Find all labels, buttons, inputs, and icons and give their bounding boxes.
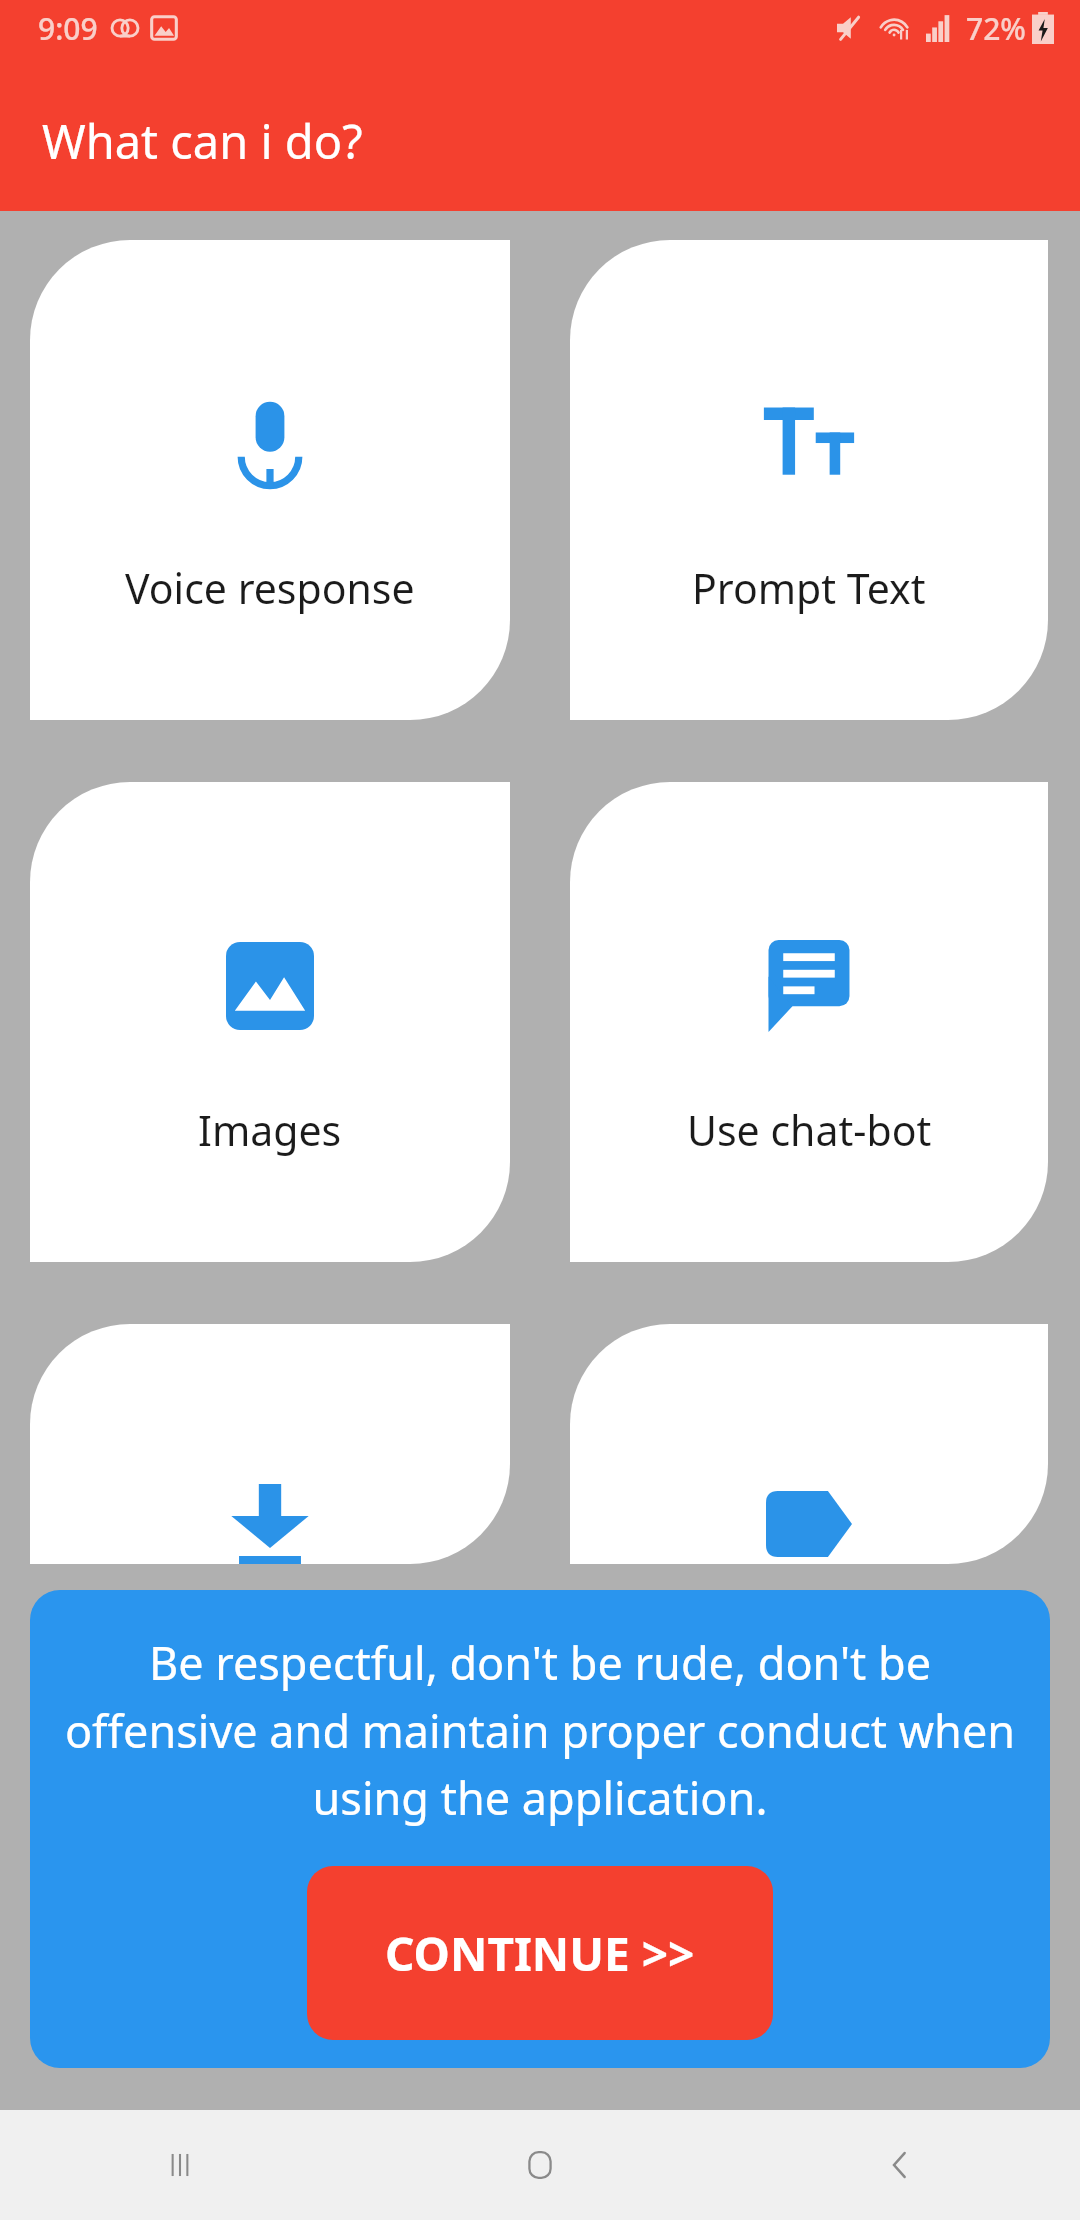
button[interactable]: Home: [360, 2110, 720, 2220]
staticText: Use chat-bot: [687, 1102, 932, 1158]
button[interactable]: Recents: [0, 2110, 360, 2220]
button[interactable]: CONTINUE >>: [307, 1866, 773, 2040]
button[interactable]: Voice response: [30, 240, 510, 720]
button[interactable]: Back: [720, 2110, 1080, 2220]
button[interactable]: Images: [30, 782, 510, 1262]
staticText: Be respectful, don't be rude, don't be o…: [64, 1632, 1016, 1828]
staticText: Prompt Text: [692, 560, 926, 616]
staticText: CONTINUE >>: [385, 1922, 695, 1985]
button[interactable]: [570, 1324, 1048, 1564]
button[interactable]: Prompt Text: [570, 240, 1048, 720]
button[interactable]: [30, 1324, 510, 1564]
staticText: 9:09: [38, 8, 98, 49]
staticText: Voice response: [125, 560, 415, 616]
staticText: What can i do?: [42, 109, 363, 173]
staticText: Images: [198, 1102, 342, 1158]
staticText: 72%: [966, 8, 1026, 49]
button[interactable]: Use chat-bot: [570, 782, 1048, 1262]
